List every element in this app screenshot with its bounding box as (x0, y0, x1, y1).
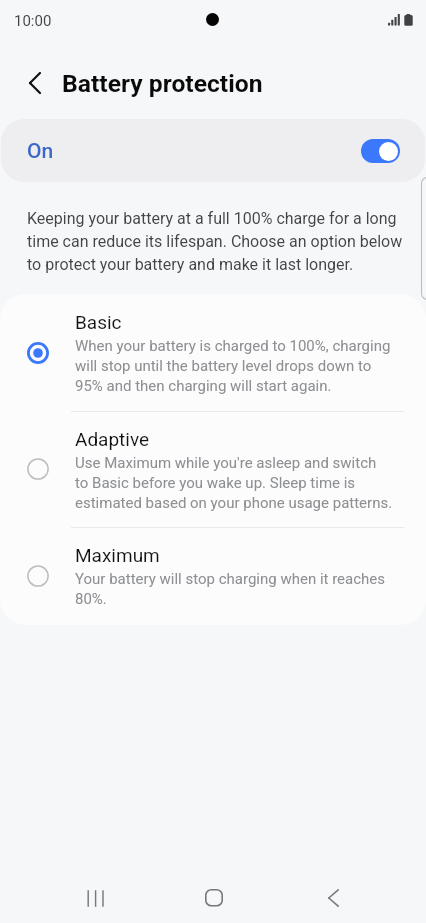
staticText: Adaptive (75, 429, 150, 450)
button[interactable]: On (1, 119, 425, 182)
button[interactable]: Maximum (0, 527, 426, 625)
staticText: Battery protection (62, 69, 263, 98)
button[interactable]: Home (178, 873, 250, 923)
button[interactable]: Battery protection on (361, 139, 400, 163)
staticText: Your battery will stop charging when it … (75, 568, 393, 608)
button[interactable]: Navigate up (11, 59, 59, 107)
staticText: When your battery is charged to 100%, ch… (75, 335, 393, 395)
staticText: Basic (75, 312, 122, 333)
staticText: On (27, 136, 54, 164)
button[interactable]: Back (298, 873, 370, 923)
button[interactable]: Basic (0, 294, 426, 411)
staticText: Use Maximum while you're asleep and swit… (75, 452, 393, 512)
staticText: 10:00 (14, 13, 52, 29)
staticText: Maximum (75, 545, 160, 566)
button[interactable]: Recent apps (59, 873, 131, 923)
staticText: Keeping your battery at a full 100% char… (27, 206, 407, 275)
button[interactable]: Adaptive (0, 411, 426, 527)
